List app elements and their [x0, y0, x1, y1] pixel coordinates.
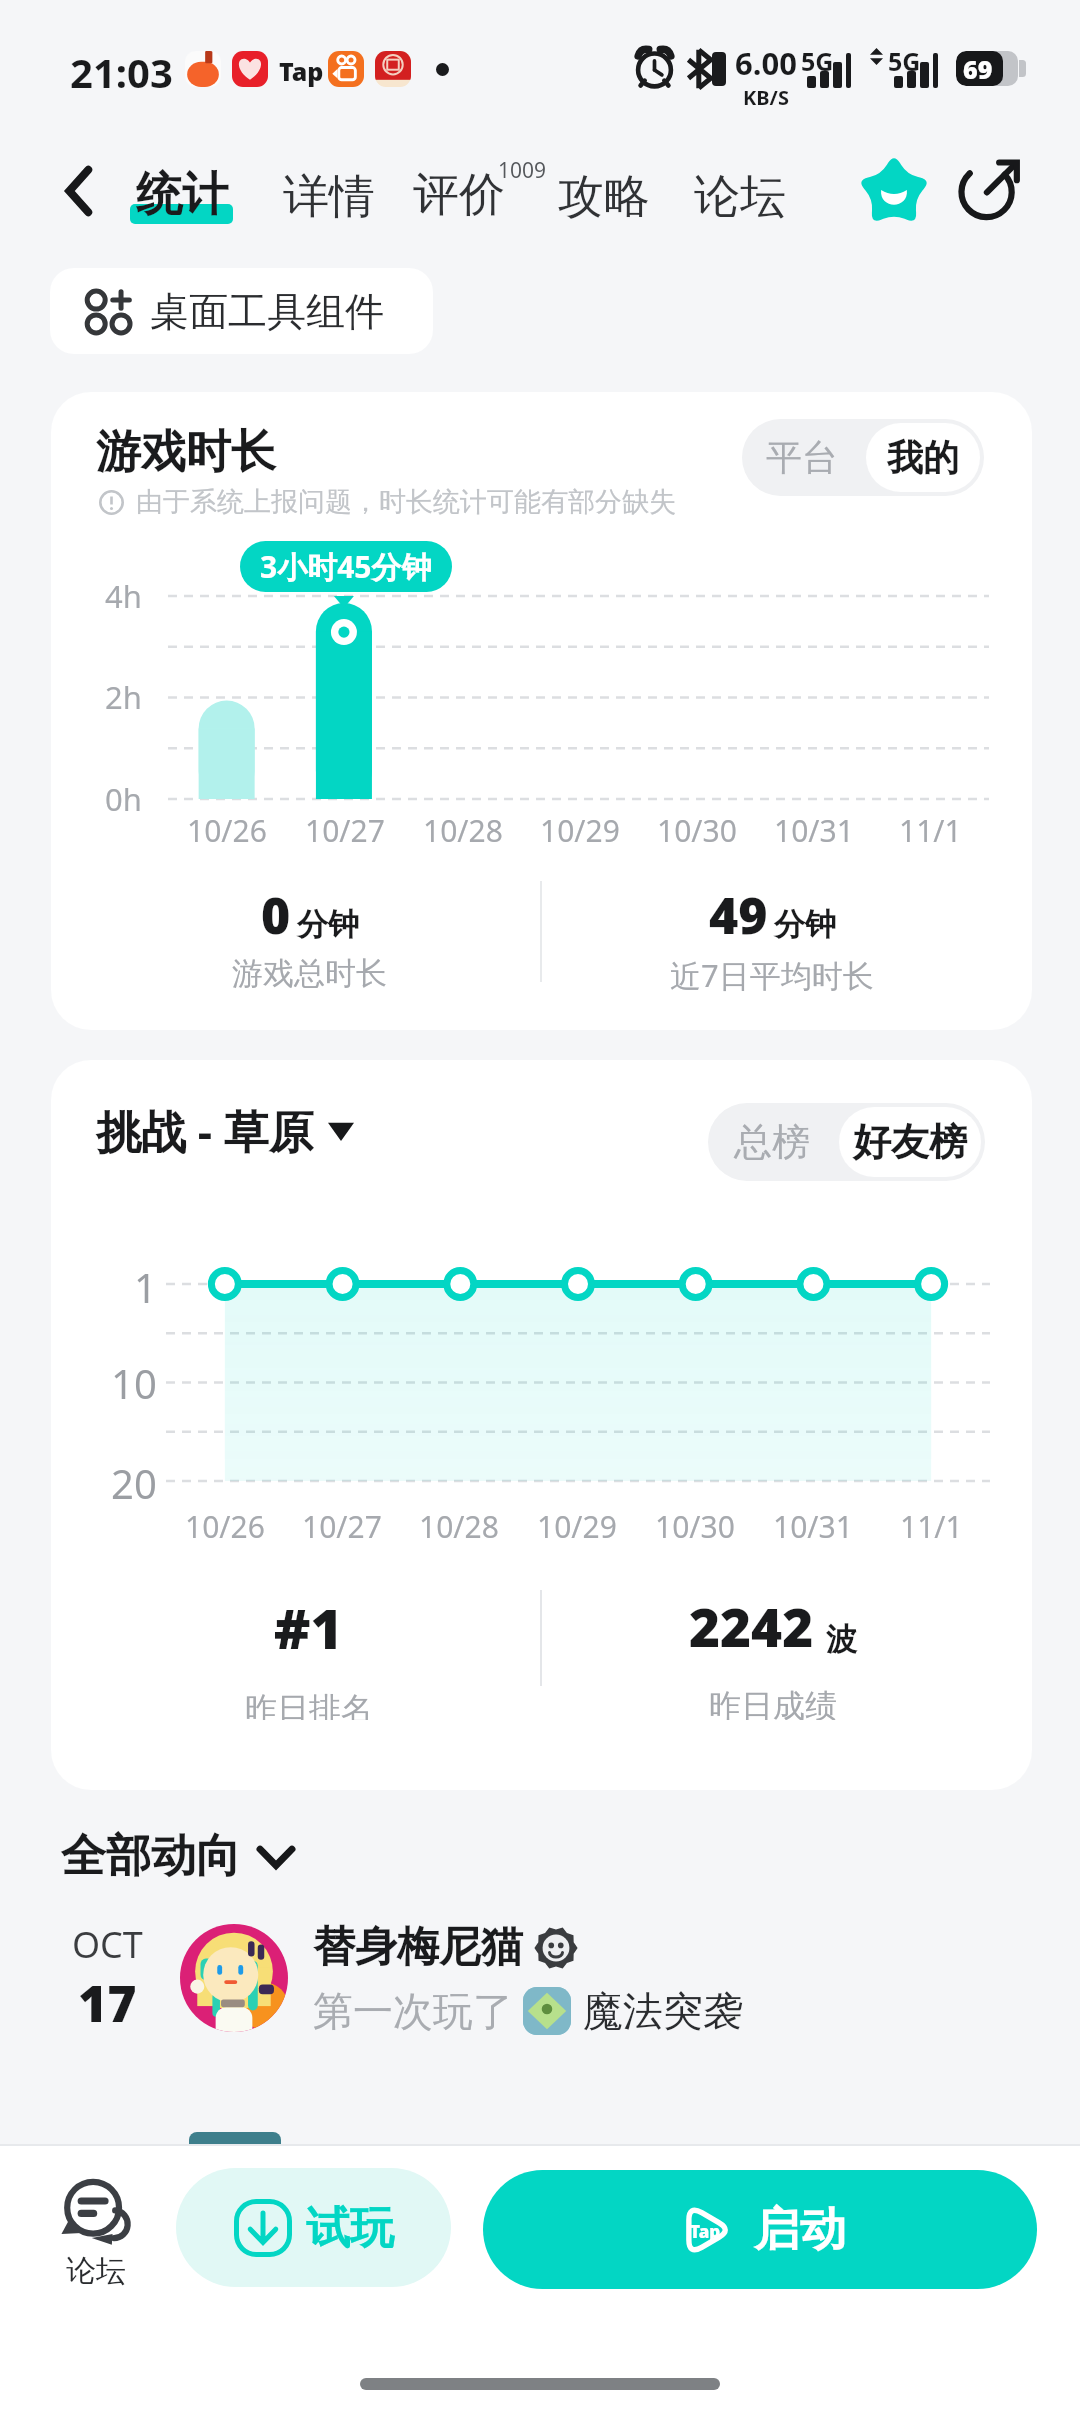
staticText: 10/26: [185, 1506, 265, 1547]
staticText: 10/27: [305, 810, 385, 851]
staticText: 桌面工具组件: [150, 287, 384, 336]
button[interactable]: 挑战 - 草原: [93, 1096, 360, 1165]
staticText: KB/S: [743, 84, 789, 111]
button[interactable]: 详情: [277, 162, 381, 232]
staticText: 挑战 - 草原: [96, 1100, 314, 1161]
staticText: 10/31: [774, 810, 854, 851]
staticText: 1009: [498, 156, 547, 185]
staticText: 10/28: [419, 1506, 499, 1547]
staticText: 全部动向: [61, 1828, 241, 1885]
button[interactable]: 我的: [866, 423, 980, 492]
staticText: 详情: [283, 168, 375, 226]
button[interactable]: 全部动向: [51, 1822, 301, 1891]
staticText: 试玩: [306, 2201, 394, 2256]
staticText: 波: [826, 1620, 857, 1659]
button[interactable]: 论坛: [688, 162, 792, 232]
staticText: 5G: [801, 44, 834, 78]
button[interactable]: 平台: [742, 419, 862, 496]
staticText: 攻略: [558, 168, 650, 226]
button[interactable]: 桌面工具组件: [50, 268, 433, 354]
button[interactable]: 总榜: [708, 1103, 835, 1181]
staticText: Tap: [690, 2220, 721, 2243]
staticText: OCT: [72, 1920, 143, 1969]
staticText: 我的: [887, 435, 959, 480]
button[interactable]: Tap: [483, 2170, 1037, 2289]
staticText: 启动: [754, 2201, 846, 2259]
staticText: 21:03: [70, 45, 173, 99]
staticText: 游戏时长: [96, 424, 276, 481]
staticText: 49: [709, 881, 768, 949]
staticText: 分钟: [297, 905, 359, 944]
button[interactable]: Favorite: [853, 149, 935, 231]
staticText: 2h: [105, 676, 142, 718]
staticText: 替身梅尼猫: [313, 1921, 523, 1974]
staticText: 10/26: [187, 810, 267, 851]
staticText: 10/27: [302, 1506, 382, 1547]
staticText: 分钟: [774, 905, 836, 944]
staticText: 5G: [888, 44, 921, 78]
staticText: 6.00: [735, 42, 797, 84]
button[interactable]: 好友榜: [839, 1107, 981, 1177]
button[interactable]: 攻略: [552, 162, 656, 232]
staticText: 昨日成绩: [709, 1686, 837, 1720]
staticText: 3小时45分钟: [260, 546, 432, 587]
staticText: 游戏总时长: [232, 954, 387, 993]
staticText: 4h: [105, 575, 142, 617]
button[interactable]: 评价: [409, 156, 551, 224]
staticText: 第一次玩了: [313, 1986, 513, 2036]
staticText: 论坛: [66, 2252, 126, 2290]
staticText: 17: [78, 1969, 137, 2037]
staticText: 20: [111, 1456, 157, 1510]
staticText: 论坛: [694, 168, 786, 226]
staticText: 10/30: [657, 810, 737, 851]
button[interactable]: 统计: [126, 166, 237, 236]
staticText: 10/30: [655, 1506, 735, 1547]
staticText: 昨日排名: [245, 1689, 373, 1720]
staticText: 魔法突袭: [583, 1986, 743, 2036]
staticText: 平台: [766, 435, 838, 480]
staticText: 69: [963, 52, 993, 86]
button[interactable]: 论坛: [46, 2180, 146, 2290]
staticText: 0: [261, 881, 291, 949]
button[interactable]: Back: [38, 151, 118, 231]
staticText: 10/28: [423, 810, 503, 851]
staticText: 0h: [105, 778, 142, 820]
staticText: 10/31: [773, 1506, 853, 1547]
staticText: 10/29: [540, 810, 620, 851]
staticText: 评价: [413, 166, 505, 224]
button[interactable]: Share: [951, 149, 1031, 229]
staticText: Tap: [279, 54, 324, 88]
staticText: #1: [274, 1590, 343, 1665]
staticText: 10/29: [537, 1506, 617, 1547]
staticText: 11/1: [899, 810, 962, 851]
staticText: 好友榜: [853, 1118, 967, 1166]
staticText: 2242: [689, 1590, 814, 1662]
button[interactable]: 试玩: [176, 2168, 451, 2287]
staticText: 11/1: [900, 1506, 963, 1547]
staticText: 10: [111, 1356, 157, 1410]
staticText: 近7日平均时长: [670, 954, 874, 996]
staticText: 总榜: [734, 1118, 810, 1166]
staticText: 统计: [136, 166, 228, 224]
button[interactable]: OCT: [51, 1912, 1080, 2044]
staticText: 由于系统上报问题，时长统计可能有部分缺失: [136, 485, 676, 519]
staticText: 1: [134, 1260, 157, 1314]
